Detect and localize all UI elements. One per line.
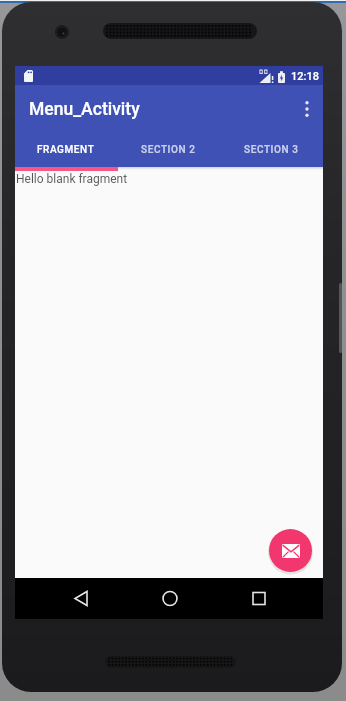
staticText: FRAGMENT (37, 144, 95, 156)
button[interactable] (61, 578, 101, 619)
staticText: 12:18 (291, 70, 319, 83)
staticText: Menu_Activity (29, 99, 140, 120)
button[interactable]: SECTION 3 (220, 133, 323, 167)
staticText: Hello blank fragment (16, 172, 128, 186)
button[interactable]: SECTION 2 (117, 133, 220, 167)
staticText: SECTION 3 (244, 144, 299, 156)
button[interactable] (150, 578, 190, 619)
staticText: SECTION 2 (141, 144, 196, 156)
button[interactable] (239, 578, 279, 619)
button[interactable] (291, 85, 323, 133)
button[interactable] (269, 529, 312, 572)
button[interactable]: FRAGMENT (15, 133, 117, 167)
